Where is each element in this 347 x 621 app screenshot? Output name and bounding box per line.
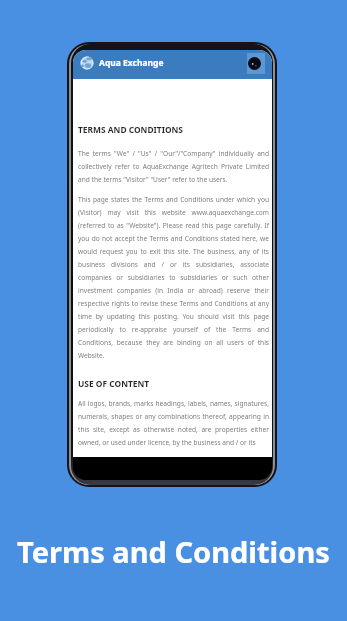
staticText: This page states the Terms and Condition… [78,195,269,360]
button[interactable]: Aqua Exchange logo [80,50,272,75]
staticText: TERMS AND CONDITIONS [78,124,183,135]
staticText: Aqua Exchange [99,57,164,69]
staticText: Terms and Conditions [17,532,330,571]
staticText: USE OF CONTENT [78,378,150,389]
staticText: All logos, brands, marks headings, label… [78,399,269,447]
other: Aqua Exchange logo [80,56,94,70]
staticText: The terms "We" / "Us" / "Our"/"Company" … [78,149,269,184]
other: Front camera [248,57,261,70]
